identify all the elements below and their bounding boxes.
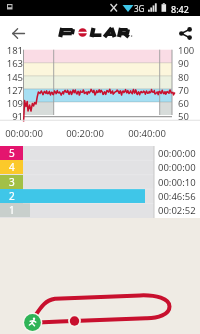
staticText: 127 <box>0 84 23 97</box>
staticText: 70 <box>178 84 189 97</box>
staticText: 00:00:00 <box>158 147 196 160</box>
staticText: 109 <box>0 97 23 110</box>
staticText: 00:00:00 <box>2 127 46 140</box>
staticText: 145 <box>0 71 23 84</box>
button[interactable]: 2 <box>0 189 200 203</box>
button[interactable]: 1 <box>0 203 200 217</box>
staticText: 181 <box>0 44 23 57</box>
button[interactable]: Route map <box>0 218 200 334</box>
button[interactable]: Share <box>174 22 196 44</box>
staticText: 80 <box>178 71 189 84</box>
button[interactable]: 5 <box>0 146 200 160</box>
staticText: 90 <box>178 57 189 70</box>
staticText: 00:20:00 <box>63 127 107 140</box>
staticText: 00:40:00 <box>125 127 169 140</box>
button[interactable]: 3 <box>0 175 200 189</box>
staticText: 100 <box>178 44 195 57</box>
button[interactable]: 4 <box>0 160 200 174</box>
staticText: 163 <box>0 57 23 70</box>
button[interactable]: Back <box>7 22 29 44</box>
staticText: 00:02:52 <box>158 204 196 217</box>
staticText: 91 <box>0 110 23 123</box>
staticText: 50 <box>178 110 189 123</box>
staticText: 2 <box>9 189 15 203</box>
staticText: 8:42 <box>171 3 189 15</box>
staticText: 00:46:56 <box>158 190 196 203</box>
staticText: 00:00:10 <box>158 176 196 189</box>
staticText: 5 <box>9 146 15 160</box>
staticText: 60 <box>178 97 189 110</box>
staticText: 1 <box>9 203 15 217</box>
staticText: 3 <box>9 175 15 189</box>
staticText: 00:00:00 <box>158 161 196 174</box>
staticText: 4 <box>9 160 15 174</box>
staticText: 3G <box>134 3 145 14</box>
